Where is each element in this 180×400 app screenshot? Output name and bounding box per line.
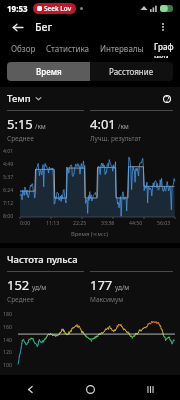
staticText: /км bbox=[35, 122, 46, 131]
button[interactable]: Расстояние bbox=[90, 62, 173, 81]
button[interactable]: Статистика bbox=[46, 38, 90, 58]
staticText: 177 bbox=[90, 276, 113, 294]
button[interactable]: Темп bbox=[7, 92, 42, 105]
staticText: Лучш. результат bbox=[90, 134, 142, 143]
staticText: 4:49 bbox=[3, 160, 14, 167]
staticText: 100 bbox=[3, 361, 12, 368]
button[interactable]: Recents bbox=[120, 378, 180, 400]
staticText: 160 bbox=[3, 323, 12, 330]
staticText: Темп bbox=[7, 92, 31, 105]
staticText: Время (ч:м:с) bbox=[71, 230, 109, 238]
button[interactable]: Help bbox=[161, 93, 173, 105]
staticText: Частота пульса bbox=[7, 253, 78, 266]
staticText: 6:24 bbox=[3, 186, 14, 193]
staticText: 120 bbox=[3, 348, 12, 355]
staticText: Статистика bbox=[46, 43, 90, 54]
staticText: 8:00 bbox=[3, 212, 14, 219]
staticText: уд/м bbox=[32, 283, 47, 292]
staticText: 33:38 bbox=[101, 219, 115, 226]
button[interactable]: Обзор bbox=[11, 38, 36, 58]
staticText: 56:03 bbox=[157, 219, 171, 226]
staticText: 19:53 bbox=[7, 3, 28, 14]
staticText: 180 bbox=[3, 310, 12, 317]
staticText: 4:01 bbox=[3, 147, 14, 154]
button[interactable]: More options bbox=[154, 18, 172, 36]
staticText: 152 bbox=[7, 276, 30, 294]
staticText: 5:15 bbox=[7, 115, 33, 133]
staticText: Интервалы bbox=[100, 43, 144, 54]
button[interactable]: Частота пульса bbox=[7, 253, 173, 266]
button[interactable]: Back bbox=[8, 18, 26, 36]
button[interactable]: Home bbox=[60, 378, 120, 400]
staticText: Среднее bbox=[7, 134, 34, 143]
staticText: 140 bbox=[3, 336, 12, 343]
staticText: /км bbox=[118, 122, 129, 131]
button[interactable]: Back bbox=[0, 378, 60, 400]
button[interactable]: Графики bbox=[154, 38, 175, 58]
staticText: 11:13 bbox=[46, 219, 60, 226]
staticText: Время bbox=[36, 66, 62, 77]
staticText: 7:12 bbox=[3, 199, 14, 206]
staticText: Seek Lov bbox=[44, 4, 72, 13]
staticText: уд/м bbox=[115, 283, 130, 292]
staticText: Бег bbox=[35, 20, 53, 34]
button[interactable]: Время bbox=[7, 62, 90, 81]
button[interactable]: Интервалы bbox=[100, 38, 144, 58]
staticText: 0:00 bbox=[20, 219, 31, 226]
staticText: Обзор bbox=[11, 43, 36, 54]
staticText: 22:25 bbox=[73, 219, 87, 226]
staticText: Максимум bbox=[90, 295, 124, 304]
staticText: 5:37 bbox=[3, 173, 14, 180]
staticText: 4:01 bbox=[90, 115, 116, 133]
staticText: 44:50 bbox=[129, 219, 143, 226]
staticText: Графики bbox=[154, 41, 175, 58]
staticText: Среднее bbox=[7, 295, 34, 304]
staticText: Расстояние bbox=[109, 66, 154, 77]
